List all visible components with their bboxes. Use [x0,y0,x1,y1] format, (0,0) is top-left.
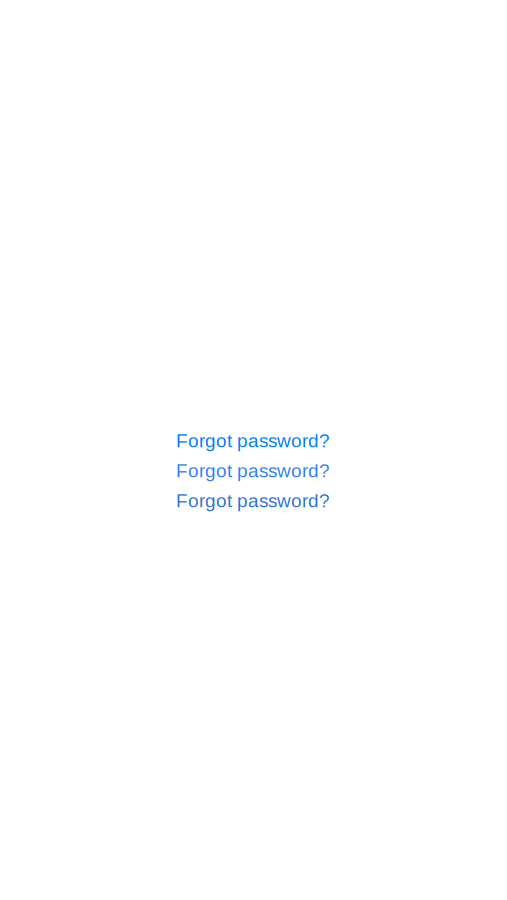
staticText: Forgot password? [176,460,330,481]
staticText: Forgot password? [176,430,330,451]
staticText: Forgot password? [176,490,330,511]
